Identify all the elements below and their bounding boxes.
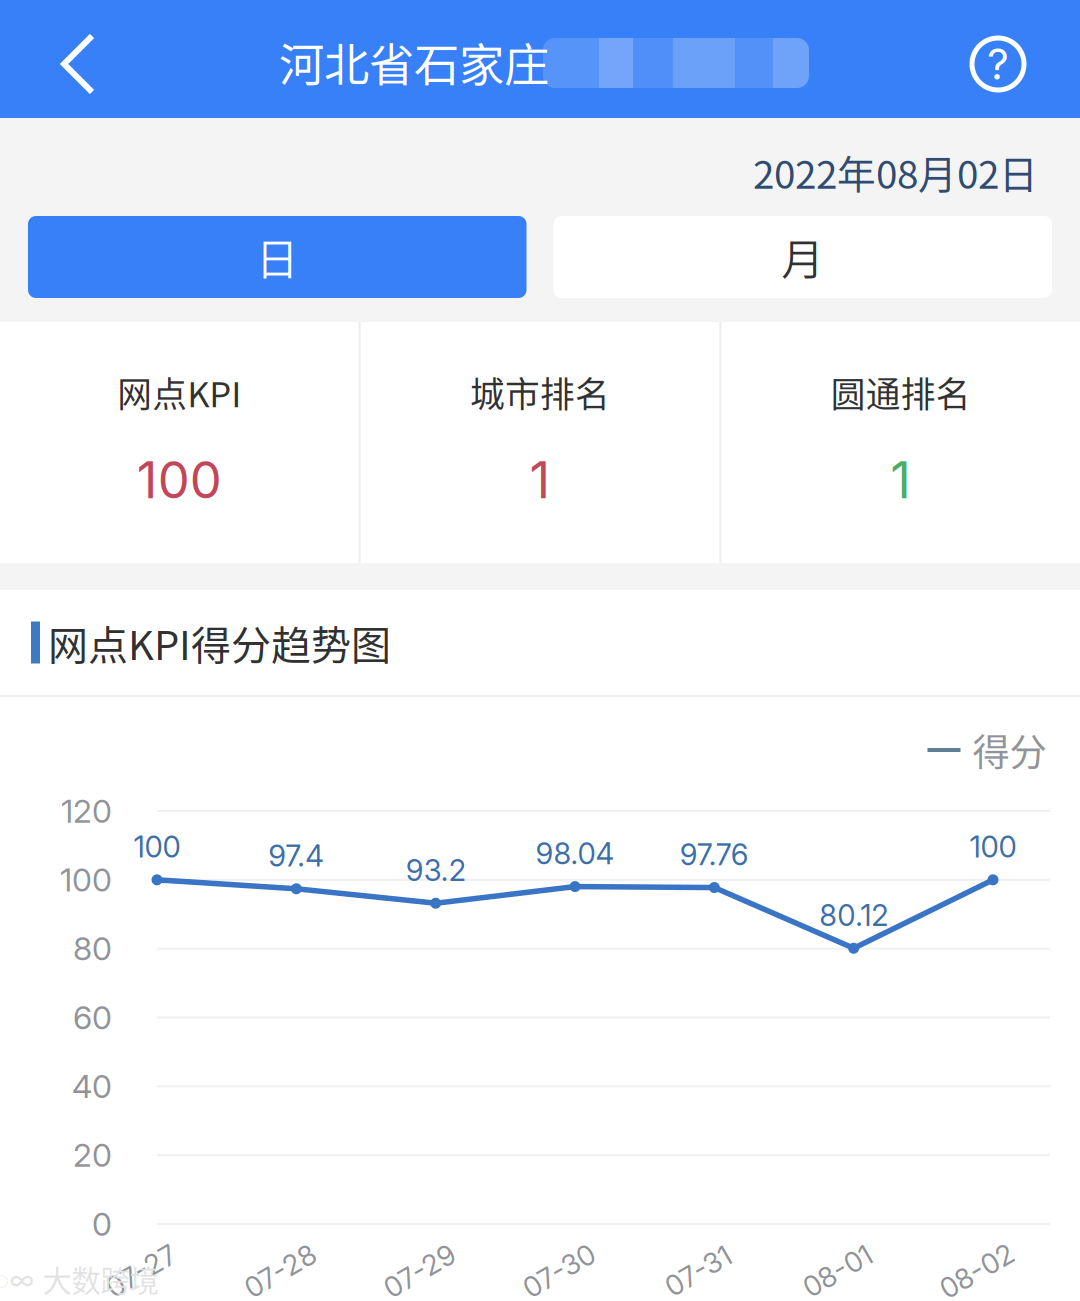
staticText: 圆通排名 — [831, 367, 971, 417]
staticText: 100 — [60, 860, 112, 899]
staticText: 07-29 — [381, 1254, 459, 1288]
staticText: 97.4 — [268, 838, 324, 873]
staticText: 93.2 — [406, 852, 466, 888]
button[interactable]: 月 — [553, 216, 1052, 298]
staticText: 07-30 — [520, 1254, 598, 1288]
staticText: 日 — [256, 226, 299, 288]
staticText: 40 — [72, 1067, 112, 1106]
button[interactable]: Back — [0, 0, 120, 118]
staticText: 网点KPI — [117, 367, 241, 417]
button[interactable]: Help — [970, 0, 1080, 118]
staticText: ◌∞ — [0, 1261, 34, 1297]
staticText: 2022年08月02日 — [753, 144, 1038, 200]
button[interactable]: 圆通排名 — [721, 322, 1080, 563]
staticText: 网点KPI得分趋势图 — [48, 613, 391, 671]
staticText: 08-02 — [936, 1254, 1017, 1288]
staticText: 100 — [137, 449, 222, 510]
staticText: 城市排名 — [470, 367, 610, 417]
button[interactable]: 日 — [28, 216, 526, 298]
staticText: 得分 — [972, 723, 1046, 777]
staticText: 07-31 — [662, 1254, 734, 1288]
staticText: 100 — [969, 829, 1016, 865]
staticText: 60 — [73, 998, 112, 1037]
staticText: 120 — [61, 792, 112, 830]
staticText: 河北省石家庄 — [279, 29, 549, 95]
staticText: 80 — [73, 929, 112, 968]
staticText: 97.76 — [680, 837, 749, 872]
staticText: 大数跨境 — [42, 1258, 158, 1300]
staticText: 1 — [890, 449, 911, 510]
staticText: 月 — [781, 226, 824, 288]
staticText: ? — [987, 38, 1009, 90]
button[interactable]: 网点KPI — [0, 322, 359, 563]
staticText: 1 — [529, 449, 550, 510]
staticText: 07-28 — [241, 1254, 319, 1288]
staticText: 100 — [133, 829, 180, 865]
staticText: 08-01 — [800, 1254, 875, 1288]
staticText: 07-27 — [103, 1254, 179, 1288]
staticText: 80.12 — [819, 897, 888, 933]
staticText: 0 — [92, 1205, 112, 1243]
staticText: 20 — [73, 1136, 112, 1174]
button[interactable]: 城市排名 — [361, 322, 719, 563]
staticText: 98.04 — [535, 836, 614, 871]
